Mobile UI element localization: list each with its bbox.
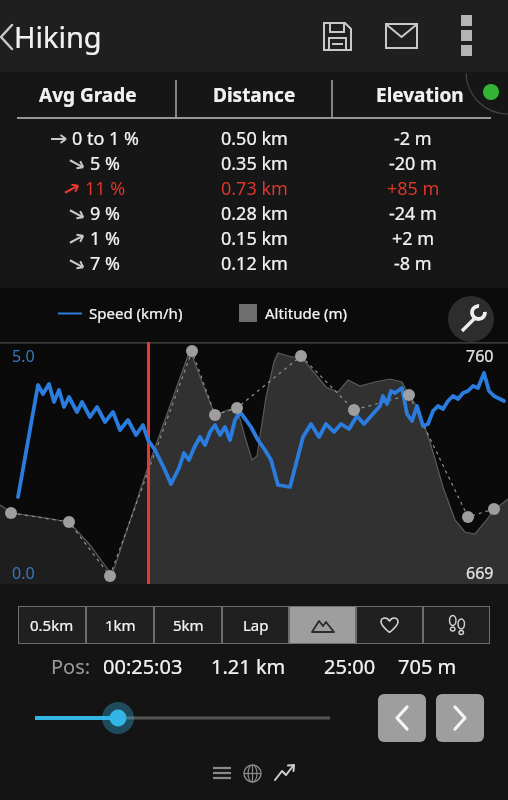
button[interactable]	[423, 606, 490, 644]
staticText: -8 m	[394, 251, 432, 276]
staticText: 0.15 km	[221, 226, 288, 251]
button[interactable]: 5km	[154, 606, 222, 644]
staticText: Lap	[243, 615, 269, 635]
button[interactable]: 1 %	[0, 226, 508, 251]
staticText: 760	[466, 345, 494, 367]
button[interactable]	[378, 694, 426, 742]
staticText: Hiking	[14, 17, 102, 56]
staticText: -24 m	[389, 201, 437, 226]
staticText: 00:25:03	[103, 653, 183, 680]
button[interactable]	[0, 690, 508, 746]
button[interactable]	[442, 12, 490, 60]
staticText: +85 m	[387, 176, 440, 201]
staticText: 5km	[173, 615, 204, 635]
staticText: 0.35 km	[221, 151, 288, 176]
button[interactable]	[272, 760, 298, 786]
staticText: 1km	[105, 615, 136, 635]
staticText: 0.0	[12, 562, 35, 584]
button[interactable]: 11 %	[0, 176, 508, 201]
staticText: -2 m	[394, 126, 432, 151]
button[interactable]	[356, 606, 423, 644]
button[interactable]	[313, 12, 361, 60]
staticText: 0 to 1 %	[72, 126, 139, 151]
staticText: 1.21 km	[211, 653, 286, 680]
button[interactable]: 7 %	[0, 251, 508, 276]
staticText: Avg Grade	[39, 82, 137, 108]
button[interactable]: 9 %	[0, 201, 508, 226]
button[interactable]: 5 %	[0, 151, 508, 176]
staticText: 9 %	[90, 201, 120, 226]
staticText: Altitude (m)	[265, 303, 348, 323]
staticText: 0.12 km	[221, 251, 288, 276]
staticText: 705 m	[398, 653, 457, 680]
button[interactable]: 0.5km	[18, 606, 86, 644]
button[interactable]: 0 to 1 %	[0, 126, 508, 151]
button[interactable]: 1km	[86, 606, 154, 644]
staticText: Distance	[213, 82, 296, 108]
staticText: +2 m	[392, 226, 435, 251]
staticText: Speed (km/h)	[89, 303, 183, 323]
staticText: 5 %	[90, 151, 120, 176]
button[interactable]: Lap	[222, 606, 289, 644]
button[interactable]	[377, 12, 425, 60]
staticText: 11 %	[85, 176, 126, 201]
button[interactable]	[436, 694, 484, 742]
staticText: -20 m	[389, 151, 437, 176]
staticText: 25:00	[324, 653, 376, 680]
staticText: 0.50 km	[221, 126, 288, 151]
button[interactable]	[210, 761, 234, 785]
staticText: Pos:	[51, 653, 91, 680]
button[interactable]	[240, 761, 264, 785]
staticText: 7 %	[90, 251, 120, 276]
staticText: 5.0	[12, 345, 35, 367]
button[interactable]: Hiking	[0, 17, 102, 56]
staticText: 0.73 km	[221, 176, 288, 201]
staticText: 669	[466, 562, 494, 584]
staticText: Elevation	[376, 82, 464, 108]
staticText: 0.5km	[30, 615, 74, 635]
button[interactable]	[289, 606, 356, 644]
staticText: 1 %	[90, 226, 120, 251]
staticText: 0.28 km	[221, 201, 288, 226]
button[interactable]	[448, 296, 494, 342]
